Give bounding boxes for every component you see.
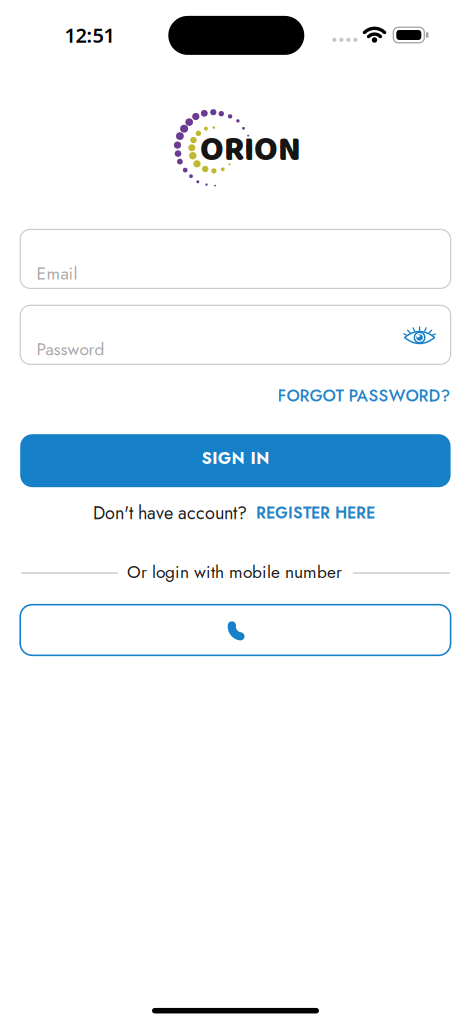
- staticText: FORGOT PASSWORD?: [278, 384, 451, 408]
- staticText: SIGN IN: [202, 446, 269, 470]
- staticText: Email: [36, 261, 77, 286]
- button[interactable]: FORGOT PASSWORD?: [278, 384, 451, 408]
- staticText: ORION: [200, 123, 301, 177]
- button[interactable]: Login with mobile number: [20, 605, 451, 655]
- button[interactable]: REGISTER HERE: [256, 501, 375, 524]
- button[interactable]: Show password: [402, 321, 438, 351]
- staticText: 12:51: [64, 22, 114, 48]
- button[interactable]: SIGN IN: [20, 434, 451, 487]
- staticText: Password: [36, 337, 104, 362]
- staticText: Don't have account?: [93, 500, 247, 526]
- staticText: Or login with mobile number: [127, 559, 342, 584]
- staticText: REGISTER HERE: [256, 501, 375, 524]
